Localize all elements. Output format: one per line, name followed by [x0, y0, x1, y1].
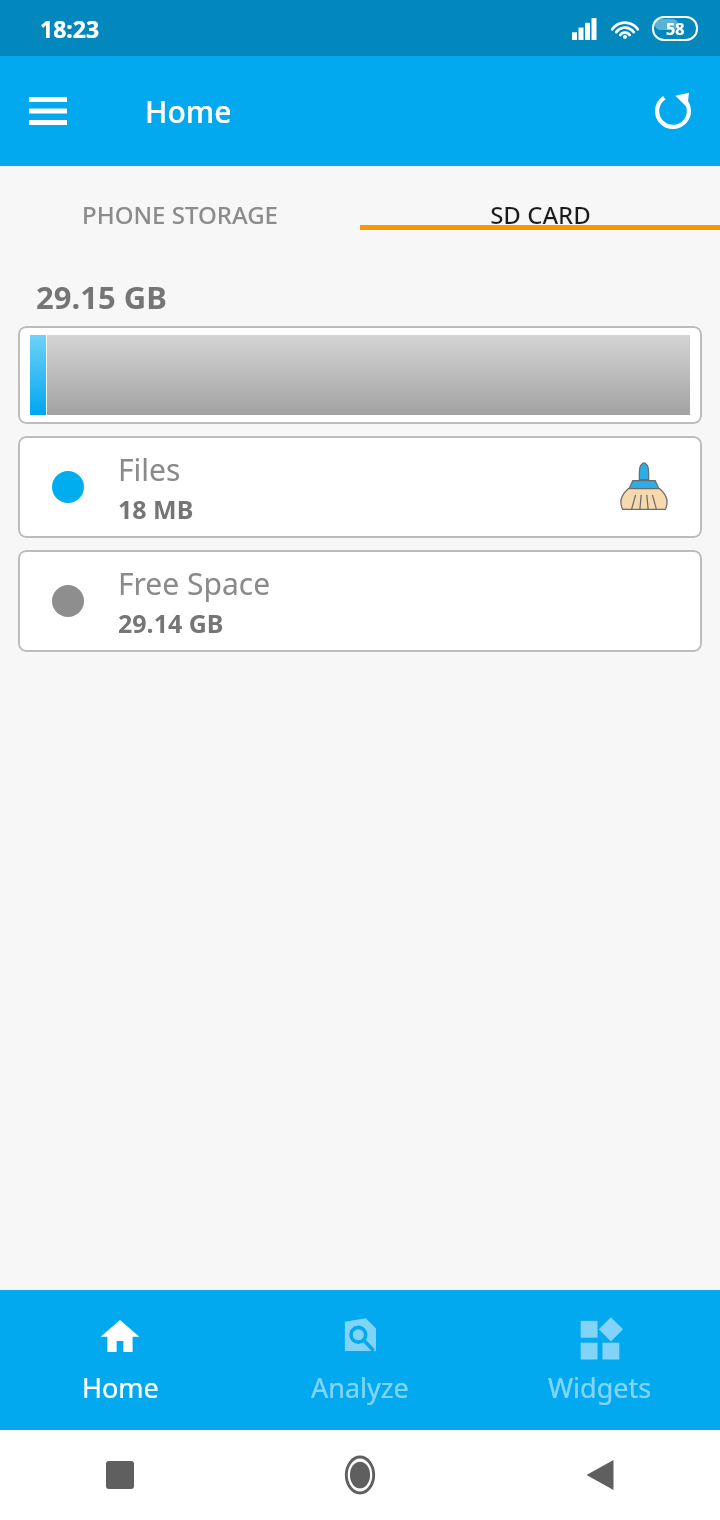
button[interactable]: Free Space [18, 550, 702, 652]
staticText: Free Space [118, 563, 271, 604]
button[interactable] [18, 326, 702, 424]
staticText: Widgets [548, 1369, 652, 1406]
staticText: SD CARD [490, 198, 591, 231]
staticText: 18 MB [118, 492, 194, 526]
staticText: 29.14 GB [118, 606, 224, 640]
button[interactable]: Open navigation menu [20, 83, 76, 139]
button[interactable]: Recent apps [0, 1430, 240, 1520]
button[interactable]: Home [240, 1430, 480, 1520]
staticText: 18:23 [40, 13, 100, 44]
staticText: Home [145, 91, 232, 132]
staticText: PHONE STORAGE [82, 198, 278, 231]
staticText: Analyze [311, 1369, 409, 1406]
staticText: 29.15 GB [36, 276, 167, 318]
button[interactable]: Back [480, 1430, 720, 1520]
button[interactable]: SD CARD [360, 166, 720, 262]
button[interactable]: PHONE STORAGE [0, 166, 360, 262]
staticText: 58 [666, 18, 685, 40]
button[interactable]: Analyze [240, 1290, 480, 1430]
staticText: Files [118, 449, 181, 490]
button[interactable]: Home [0, 1290, 240, 1430]
staticText: Home [82, 1369, 159, 1406]
button[interactable]: Refresh [644, 82, 702, 140]
button[interactable]: Widgets [480, 1290, 720, 1430]
button[interactable]: Files [18, 436, 702, 538]
button[interactable]: Clean files [612, 455, 676, 519]
